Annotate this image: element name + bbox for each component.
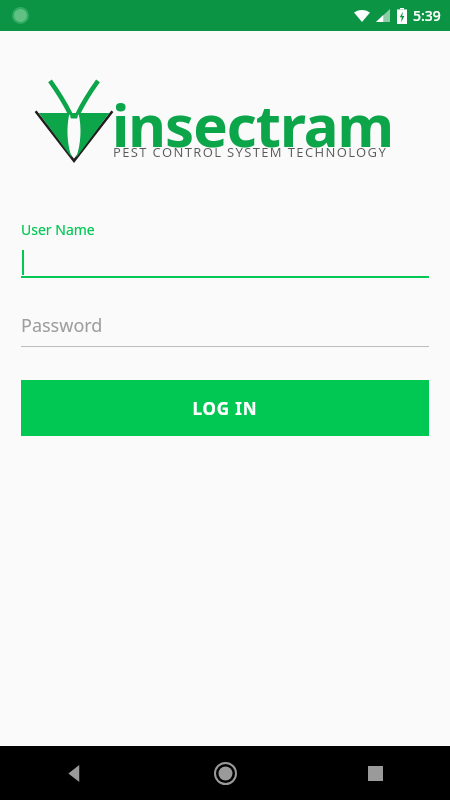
staticText: LOG IN (192, 397, 258, 420)
button[interactable]: Back (0, 746, 150, 800)
button[interactable]: Password (21, 310, 429, 347)
staticText: 5:39 (413, 6, 441, 25)
staticText: insectram (112, 85, 393, 164)
button[interactable]: LOG IN (21, 380, 429, 436)
button[interactable]: Home (150, 746, 300, 800)
staticText: Password (21, 313, 103, 338)
button[interactable]: Recent apps (300, 746, 450, 800)
staticText: User Name (21, 220, 95, 239)
staticText: PEST CONTROL SYSTEM TECHNOLOGY (113, 143, 388, 161)
button[interactable]: User Name (21, 220, 429, 278)
